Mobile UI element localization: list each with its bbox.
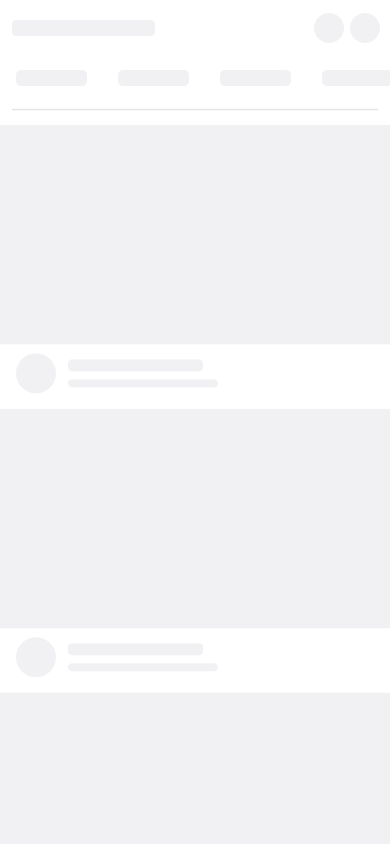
button[interactable]: Loading video [0, 409, 390, 693]
button[interactable]: Loading video [0, 125, 390, 409]
button[interactable]: Search [314, 13, 344, 43]
button[interactable]: Account [350, 13, 380, 43]
